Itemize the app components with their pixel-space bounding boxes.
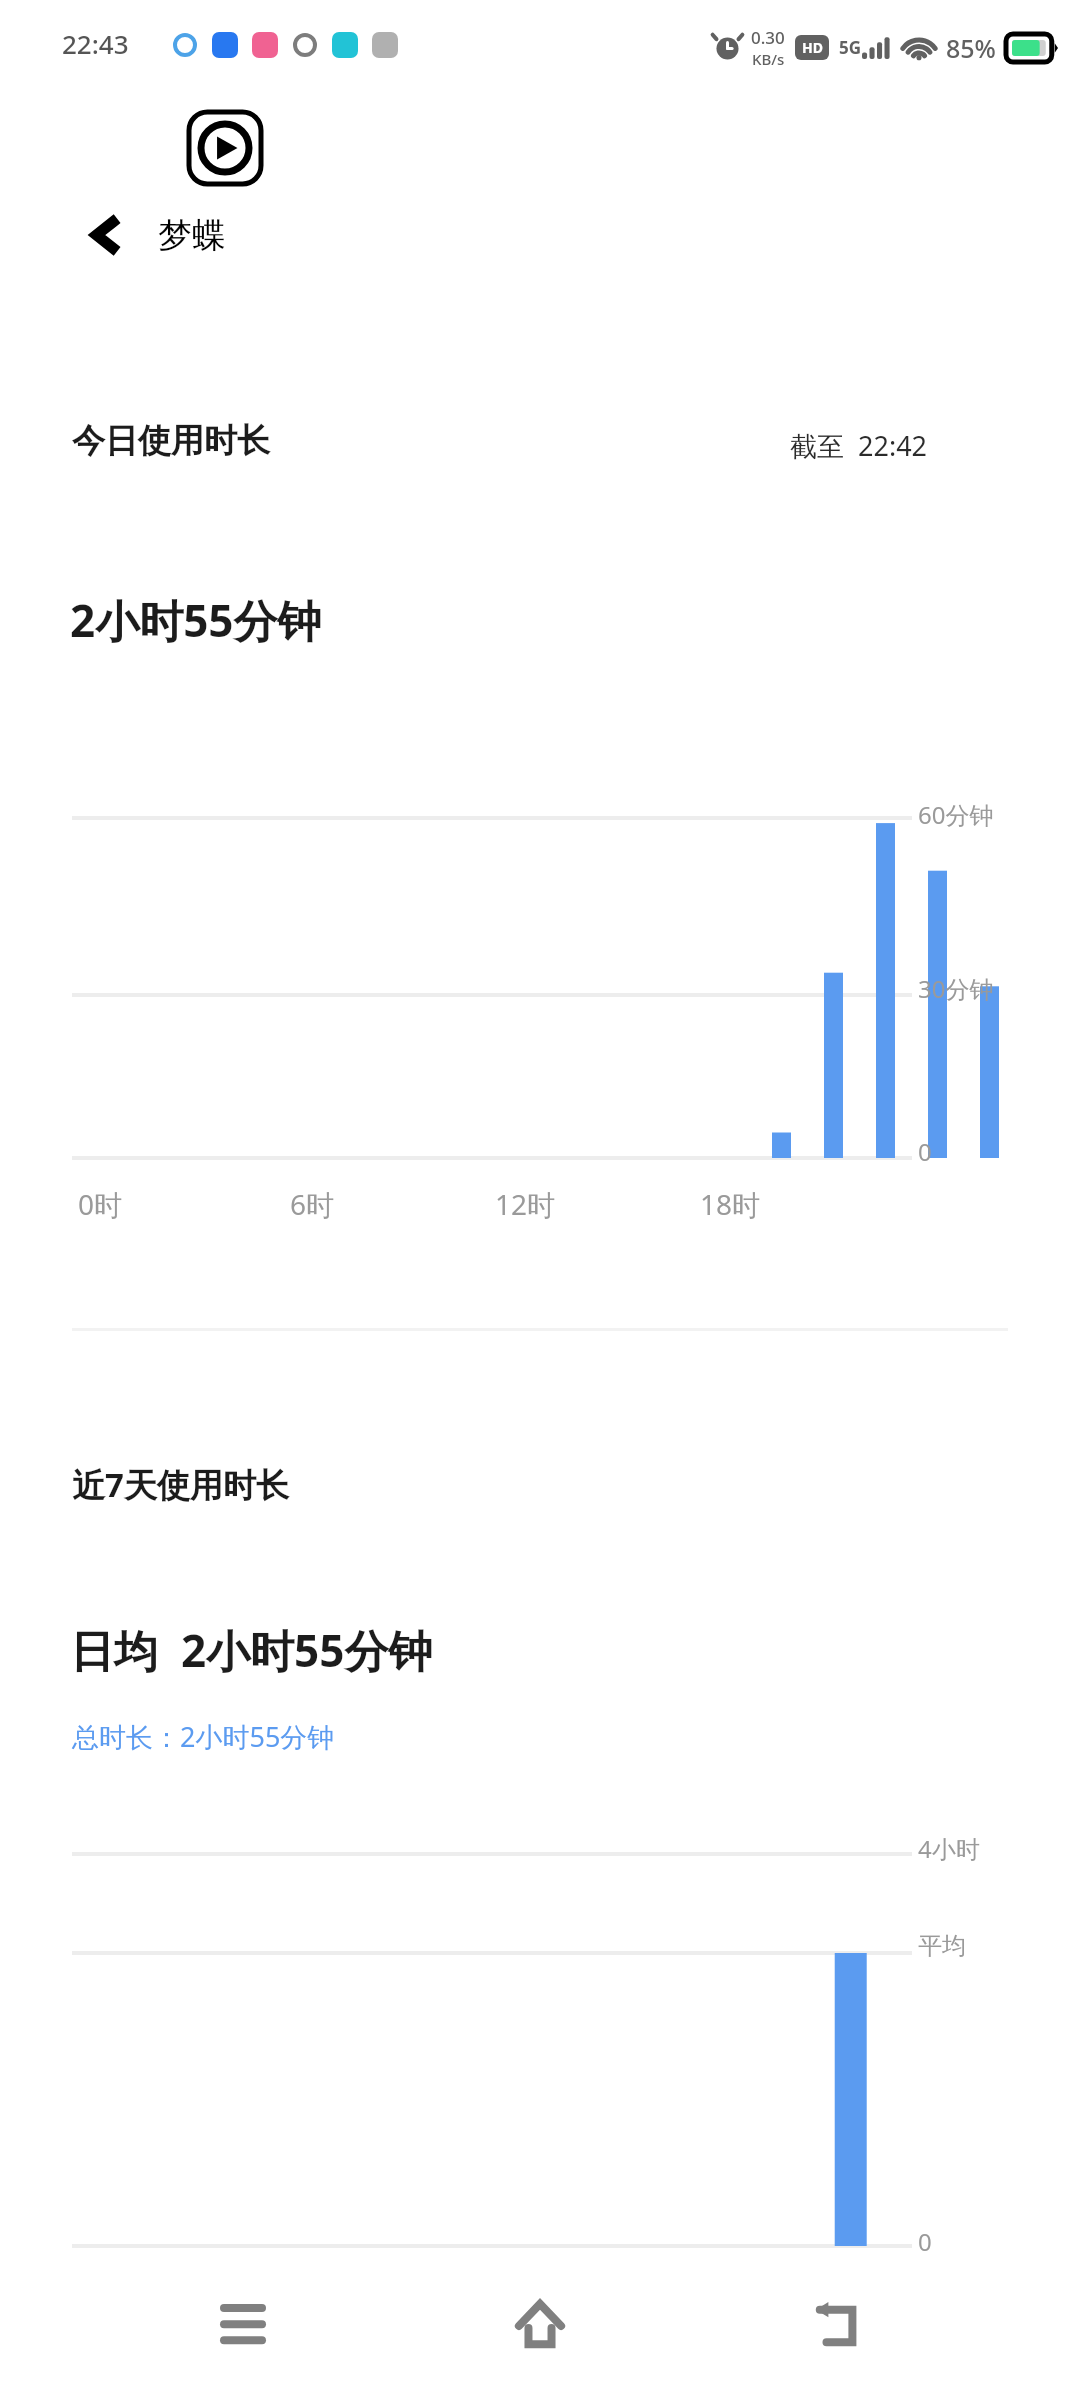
staticText: 梦蝶 [158,214,226,257]
staticText: 18时 [700,1185,761,1223]
staticText: HD [802,38,823,57]
staticText: 平均 [918,1931,966,1961]
staticText: 22:43 [62,26,129,61]
other: App icon [185,108,265,188]
button[interactable]: Back [783,2270,893,2380]
staticText: 日均 2小时55分钟 [70,1620,433,1680]
staticText: 近7天使用时长 [72,1462,289,1507]
staticText: KB/s [752,49,785,69]
staticText: 30分钟 [918,972,994,1005]
button[interactable]: Back [78,207,134,263]
button[interactable]: Home [485,2270,595,2380]
staticText: 0时 [78,1185,123,1223]
staticText: 总时长：2小时55分钟 [72,1718,335,1755]
staticText: 5G [839,36,862,59]
button[interactable]: Recents [188,2270,298,2380]
staticText: 今日使用时长 [72,420,270,462]
staticText: 0 [918,1135,932,1168]
staticText: 6时 [290,1185,335,1223]
staticText: 2小时55分钟 [70,590,322,650]
staticText: 12时 [495,1185,556,1223]
staticText: 0.30 [751,26,785,49]
staticText: 0 [918,2225,932,2258]
staticText: 4小时 [918,1832,980,1865]
staticText: 截至 22:42 [790,427,928,464]
staticText: 85% [946,31,996,65]
staticText: 60分钟 [918,798,994,831]
